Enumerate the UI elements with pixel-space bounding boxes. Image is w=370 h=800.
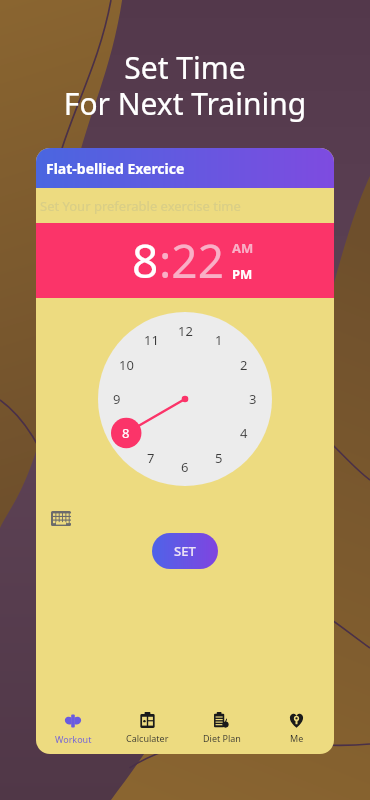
staticText: 8 <box>122 424 130 442</box>
staticText: Set Time For Next Training <box>0 47 370 124</box>
button[interactable]: :22 <box>159 229 224 292</box>
staticText: 7 <box>147 449 155 467</box>
staticText: 3 <box>249 390 257 408</box>
staticText: Diet Plan <box>203 732 241 744</box>
staticText: 2 <box>240 356 248 374</box>
button[interactable]: Me <box>259 702 334 754</box>
staticText: Flat-bellied Exercice <box>46 159 185 178</box>
staticText: Set Your preferable exercise time <box>40 197 241 215</box>
staticText: 9 <box>113 390 121 408</box>
staticText: Me <box>290 732 304 744</box>
button[interactable]: SET <box>152 533 218 569</box>
button[interactable]: Calculater <box>110 702 184 754</box>
staticText: 1 <box>215 331 223 349</box>
button[interactable]: Diet Plan <box>184 702 259 754</box>
button[interactable]: Keyboard input <box>49 506 73 530</box>
button[interactable]: Workout <box>36 702 110 754</box>
button[interactable]: 1 <box>98 312 272 486</box>
staticText: 5 <box>215 449 223 467</box>
staticText: SET <box>174 542 196 560</box>
button[interactable]: PM <box>232 265 253 283</box>
button[interactable]: 8 <box>132 229 159 292</box>
staticText: 4 <box>240 424 248 442</box>
staticText: Workout <box>55 733 92 745</box>
staticText: 6 <box>181 458 189 476</box>
staticText: 12 <box>178 322 193 340</box>
staticText: Calculater <box>126 732 169 744</box>
staticText: 10 <box>119 356 134 374</box>
staticText: 11 <box>144 331 159 349</box>
button[interactable]: AM <box>232 239 254 257</box>
